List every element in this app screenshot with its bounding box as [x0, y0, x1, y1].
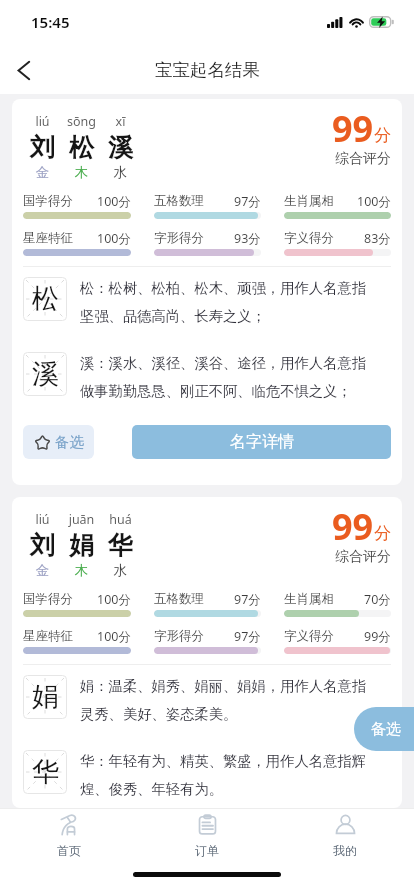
staticText: 星座特征	[23, 628, 73, 644]
staticText: 娟：温柔、娟秀、娟丽、娟娟，用作人名意指灵秀、美好、姿态柔美。	[80, 677, 380, 723]
staticText: 100分	[97, 230, 131, 247]
staticText: 溪	[32, 357, 59, 391]
staticText: 国学得分	[23, 193, 73, 209]
staticText: 娟	[62, 530, 101, 561]
staticText: 99	[332, 502, 374, 551]
staticText: 木	[62, 164, 101, 181]
staticText: 备选	[55, 433, 84, 451]
staticText: 松	[62, 132, 101, 163]
staticText: 松	[32, 282, 59, 316]
staticText: sōng	[62, 113, 101, 130]
staticText: 97分	[234, 591, 261, 608]
button[interactable]: 名字详情	[132, 425, 391, 459]
button[interactable]: 订单	[138, 809, 276, 863]
staticText: 名字详情	[230, 432, 294, 452]
staticText: 字形得分	[154, 230, 204, 246]
staticText: 娟	[32, 680, 59, 714]
staticText: 100分	[97, 628, 131, 645]
staticText: 星座特征	[23, 230, 73, 246]
staticText: 99分	[364, 628, 391, 645]
staticText: 刘	[23, 530, 62, 561]
staticText: liú	[23, 113, 62, 130]
staticText: 我的	[333, 843, 357, 858]
staticText: 分	[374, 523, 391, 544]
staticText: 97分	[234, 193, 261, 210]
staticText: 刘	[23, 132, 62, 163]
staticText: 100分	[97, 591, 131, 608]
staticText: 生肖属相	[284, 193, 334, 209]
staticText: 综合评分	[335, 150, 391, 168]
staticText: 字义得分	[284, 628, 334, 644]
staticText: 备选	[371, 720, 401, 739]
button[interactable]: Back	[3, 50, 43, 90]
staticText: 83分	[364, 230, 391, 247]
button[interactable]: 我的	[276, 809, 414, 863]
staticText: 宝宝起名结果	[155, 59, 260, 81]
staticText: huá	[101, 511, 140, 528]
staticText: 97分	[234, 628, 261, 645]
staticText: 综合评分	[335, 548, 391, 566]
staticText: 华：年轻有为、精英、繁盛，用作人名意指辉煌、俊秀、年轻有为。	[80, 752, 380, 798]
staticText: 华	[32, 755, 59, 789]
staticText: 分	[374, 125, 391, 146]
staticText: 字义得分	[284, 230, 334, 246]
staticText: 溪：溪水、溪径、溪谷、途径，用作人名意指做事勤勤恳恳、刚正不阿、临危不惧之义；	[80, 354, 380, 400]
staticText: 字形得分	[154, 628, 204, 644]
staticText: 五格数理	[154, 193, 204, 209]
staticText: 金	[23, 562, 62, 579]
staticText: 订单	[195, 843, 219, 858]
staticText: 首页	[57, 843, 81, 858]
staticText: 99	[332, 104, 374, 153]
staticText: 100分	[357, 193, 391, 210]
staticText: 70分	[364, 591, 391, 608]
staticText: 华	[101, 530, 140, 561]
staticText: 100分	[97, 193, 131, 210]
staticText: liú	[23, 511, 62, 528]
staticText: xī	[101, 113, 140, 130]
staticText: 15:45	[31, 12, 70, 32]
staticText: 水	[101, 164, 140, 181]
button[interactable]: 首页	[0, 809, 138, 863]
staticText: 生肖属相	[284, 591, 334, 607]
staticText: 五格数理	[154, 591, 204, 607]
button[interactable]: 备选	[23, 425, 94, 459]
staticText: 木	[62, 562, 101, 579]
staticText: 松：松树、松柏、松木、顽强，用作人名意指坚强、品德高尚、长寿之义；	[80, 279, 380, 325]
staticText: 国学得分	[23, 591, 73, 607]
staticText: 金	[23, 164, 62, 181]
staticText: 溪	[101, 132, 140, 163]
button[interactable]: 备选	[354, 707, 414, 751]
staticText: 水	[101, 562, 140, 579]
staticText: juān	[62, 511, 101, 528]
staticText: 93分	[234, 230, 261, 247]
